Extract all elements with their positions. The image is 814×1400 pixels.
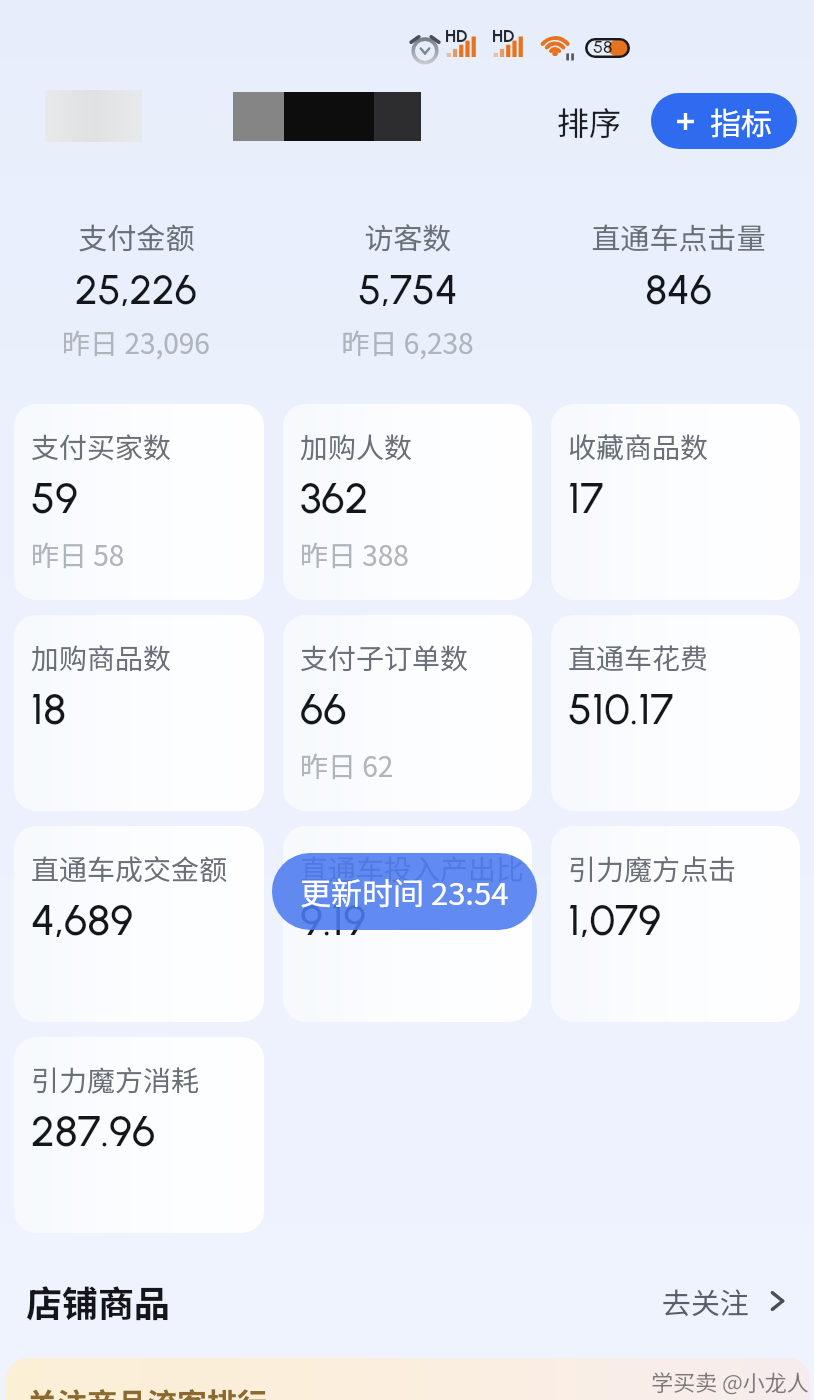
button[interactable]: 支付买家数 — [14, 404, 264, 600]
staticText: 362 — [300, 472, 369, 524]
staticText: 昨日 62 — [300, 745, 394, 786]
button[interactable]: 收藏商品数 — [551, 404, 800, 600]
button[interactable]: 支付子订单数 — [283, 615, 532, 811]
staticText: 引力魔方消耗 — [31, 1059, 200, 1100]
button[interactable]: 去关注 — [656, 1274, 796, 1328]
button[interactable]: 加购人数 — [283, 404, 532, 600]
staticText: 加购商品数 — [31, 637, 172, 678]
button[interactable]: 支付金额 — [0, 215, 272, 363]
staticText: 直通车花费 — [568, 637, 709, 678]
button[interactable]: 直通车点击量 — [543, 215, 814, 322]
staticText: 店铺商品 — [26, 1275, 171, 1327]
button[interactable]: 加购商品数 — [14, 615, 264, 811]
staticText: 5,754 — [358, 265, 458, 314]
staticText: 去关注 — [662, 1280, 750, 1322]
button[interactable]: 直通车成交金额 — [14, 826, 264, 1022]
other: Alarm set — [406, 30, 444, 68]
other: Battery 58 percent — [585, 38, 630, 58]
button[interactable]: 指标 — [651, 93, 797, 149]
button[interactable]: 排序 — [541, 86, 638, 156]
staticText: 收藏商品数 — [568, 426, 709, 467]
other: SIM 2 signal, HD voice — [493, 33, 528, 58]
button[interactable]: 关注商品流客排行 — [6, 1358, 810, 1400]
staticText: 9.19 — [300, 894, 367, 946]
staticText: 昨日 6,238 — [341, 322, 474, 363]
staticText: HD — [492, 26, 515, 46]
staticText: 支付子订单数 — [300, 637, 469, 678]
staticText: 支付买家数 — [31, 426, 172, 467]
staticText: 18 — [31, 683, 67, 735]
button[interactable]: 引力魔方消耗 — [14, 1037, 264, 1233]
staticText: 510.17 — [568, 683, 674, 735]
staticText: 66 — [300, 683, 347, 735]
staticText: HD — [445, 26, 468, 46]
staticText: 17 — [568, 472, 604, 524]
staticText: 访客数 — [364, 215, 452, 257]
staticText: 昨日 23,096 — [62, 322, 210, 363]
staticText: 58 — [593, 36, 613, 56]
staticText: 支付金额 — [78, 215, 195, 257]
staticText: 直通车投入产出比 — [300, 848, 525, 889]
staticText: 排序 — [557, 98, 622, 144]
staticText: 加购人数 — [300, 426, 413, 467]
staticText: 学买卖 @小龙人 — [651, 1365, 809, 1397]
staticText: 引力魔方点击 — [568, 848, 737, 889]
other: Wi-Fi connected — [538, 32, 576, 60]
staticText: 846 — [645, 265, 712, 314]
other: SIM 1 signal, HD voice — [446, 33, 481, 58]
staticText: 直通车点击量 — [591, 215, 766, 257]
button[interactable]: 访客数 — [272, 215, 543, 363]
button[interactable]: 直通车花费 — [551, 615, 800, 811]
staticText: 更新时间 23:54 — [300, 869, 509, 914]
button[interactable]: 直通车投入产出比 — [283, 826, 532, 1022]
staticText: 1,079 — [568, 894, 662, 946]
staticText: 25,226 — [75, 265, 197, 314]
staticText: 59 — [31, 472, 78, 524]
staticText: 直通车成交金额 — [31, 848, 228, 889]
staticText: 昨日 58 — [31, 534, 125, 575]
staticText: 昨日 388 — [300, 534, 409, 575]
staticText: 关注商品流客排行 — [27, 1380, 267, 1400]
staticText: 指标 — [710, 99, 772, 144]
staticText: 287.96 — [31, 1105, 156, 1157]
staticText: 4,689 — [31, 894, 134, 946]
button[interactable]: 引力魔方点击 — [551, 826, 800, 1022]
